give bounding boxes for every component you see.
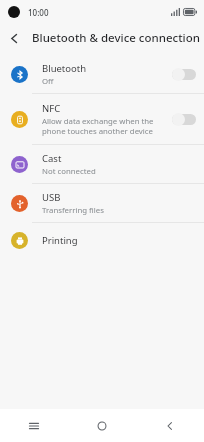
button[interactable]: Home: [68, 409, 136, 442]
staticText: Bluetooth & device connection: [32, 30, 200, 46]
staticText: Printing: [42, 234, 78, 247]
staticText: NFC: [42, 102, 61, 115]
staticText: Bluetooth: [42, 62, 87, 75]
staticText: Allow data exchange when the phone touch…: [42, 116, 154, 136]
button[interactable]: Toggle: [172, 68, 196, 81]
staticText: 10:00: [28, 7, 49, 18]
staticText: Cast: [42, 152, 62, 165]
button[interactable]: NFC: [0, 94, 204, 144]
button[interactable]: Toggle: [172, 113, 196, 126]
button[interactable]: Cast: [0, 145, 204, 183]
button[interactable]: Printing: [0, 223, 204, 257]
button[interactable]: Back: [136, 409, 204, 442]
button[interactable]: Bluetooth: [0, 55, 204, 93]
staticText: Off: [42, 76, 54, 87]
button[interactable]: USB: [0, 184, 204, 222]
staticText: Not connected: [42, 166, 96, 177]
button[interactable]: Back: [0, 24, 28, 52]
staticText: Transferring files: [42, 205, 104, 216]
button[interactable]: Recent apps: [0, 409, 68, 442]
staticText: USB: [42, 191, 61, 204]
